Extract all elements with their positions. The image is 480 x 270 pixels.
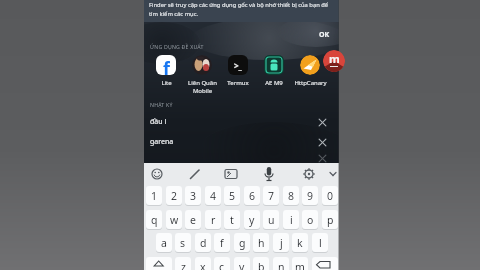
staticText: 1 <box>151 189 158 203</box>
staticText: w <box>170 213 179 227</box>
button[interactable]: t <box>224 210 240 229</box>
staticText: Termux <box>227 79 249 87</box>
button[interactable] <box>300 55 320 75</box>
staticText: p <box>327 213 334 227</box>
button[interactable]: 1 <box>146 186 162 205</box>
button[interactable]: g <box>234 233 250 252</box>
button[interactable]: 5 <box>224 186 240 205</box>
staticText: c <box>219 260 225 270</box>
button[interactable]: v <box>234 257 250 270</box>
button[interactable]: s <box>175 233 191 252</box>
staticText: f <box>220 236 224 250</box>
button[interactable] <box>222 164 240 183</box>
staticText: 4 <box>210 189 217 203</box>
button[interactable] <box>324 164 342 183</box>
staticText: NHẬT KÝ <box>150 101 173 108</box>
button[interactable]: d <box>195 233 211 252</box>
button[interactable] <box>315 135 330 150</box>
button[interactable]: 6 <box>244 186 260 205</box>
staticText: HttpCanary <box>294 79 327 87</box>
button[interactable] <box>312 257 338 270</box>
button[interactable]: đầu l <box>144 113 339 132</box>
button[interactable]: z <box>175 257 191 270</box>
button[interactable]: o <box>302 210 318 229</box>
staticText: i <box>290 213 293 227</box>
button[interactable]: k <box>292 233 308 252</box>
staticText: q <box>151 213 158 227</box>
button[interactable]: l <box>312 233 328 252</box>
staticText: 9 <box>307 189 314 203</box>
button[interactable]: 4 <box>205 186 221 205</box>
staticText: 6 <box>249 189 256 203</box>
button[interactable]: 2 <box>166 186 182 205</box>
staticText: 2 <box>171 189 178 203</box>
staticText: t <box>230 213 234 227</box>
staticText: j <box>280 236 283 250</box>
button[interactable]: n <box>273 257 289 270</box>
staticText: 0 <box>327 189 334 203</box>
button[interactable] <box>192 55 212 75</box>
button[interactable]: u <box>263 210 279 229</box>
button[interactable]: f <box>214 233 230 252</box>
button[interactable]: b <box>253 257 269 270</box>
button[interactable]: i <box>283 210 299 229</box>
button[interactable]: q <box>146 210 162 229</box>
button[interactable]: 3 <box>185 186 201 205</box>
staticText: Lite <box>161 79 172 87</box>
button[interactable]: h <box>253 233 269 252</box>
staticText: s <box>180 236 186 250</box>
staticText: b <box>258 260 265 270</box>
staticText: >_ <box>234 60 242 71</box>
button[interactable] <box>146 257 172 270</box>
button[interactable] <box>264 55 284 75</box>
button[interactable]: m <box>292 257 308 270</box>
staticText: 5 <box>229 189 236 203</box>
staticText: a <box>161 236 167 250</box>
staticText: 8 <box>288 189 295 203</box>
button[interactable]: 8 <box>283 186 299 205</box>
staticText: g <box>239 236 246 250</box>
button[interactable]: garena <box>144 133 339 152</box>
button[interactable] <box>300 164 318 183</box>
staticText: k <box>297 236 303 250</box>
button[interactable] <box>260 164 278 183</box>
staticText: Liên Quân Mobile <box>188 79 217 95</box>
button[interactable] <box>148 164 166 183</box>
staticText: o <box>307 213 314 227</box>
staticText: d <box>200 236 207 250</box>
button[interactable]: f <box>156 55 176 75</box>
button[interactable]: OK <box>312 28 336 42</box>
staticText: h <box>258 236 265 250</box>
button[interactable]: j <box>273 233 289 252</box>
staticText: OK <box>319 30 330 40</box>
staticText: AE M9 <box>265 79 283 87</box>
staticText: ỨNG DỤNG ĐỀ XUẤT <box>150 43 204 50</box>
button[interactable]: >_ <box>228 55 248 75</box>
staticText: x <box>200 260 206 270</box>
button[interactable] <box>186 164 204 183</box>
staticText: tìm kiếm các mục. <box>149 10 198 18</box>
staticText: y <box>249 213 255 227</box>
staticText: 7 <box>268 189 275 203</box>
button[interactable] <box>315 115 330 130</box>
button[interactable]: 7 <box>263 186 279 205</box>
button[interactable]: x <box>195 257 211 270</box>
staticText: m <box>295 260 305 270</box>
staticText: Finder sẽ truy cập các ứng dụng gốc và b… <box>149 1 329 9</box>
button[interactable]: c <box>214 257 230 270</box>
button[interactable]: 9 <box>302 186 318 205</box>
button[interactable]: p <box>322 210 338 229</box>
staticText: n <box>278 260 285 270</box>
button[interactable]: m <box>323 50 345 72</box>
staticText: f <box>163 56 170 75</box>
staticText: đầu l <box>150 117 167 127</box>
button[interactable]: e <box>185 210 201 229</box>
staticText: e <box>190 213 196 227</box>
staticText: 3 <box>190 189 197 203</box>
staticText: l <box>319 236 322 250</box>
button[interactable]: a <box>156 233 172 252</box>
button[interactable]: y <box>244 210 260 229</box>
button[interactable]: r <box>205 210 221 229</box>
button[interactable]: w <box>166 210 182 229</box>
button[interactable]: 0 <box>322 186 338 205</box>
